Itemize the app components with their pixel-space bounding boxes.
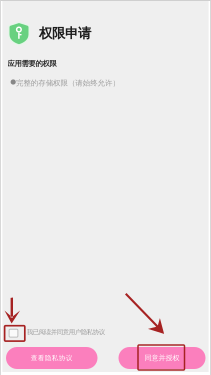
staticText: 权限申请	[39, 25, 91, 42]
staticText: 我已阅读并同意用户隐私协议	[27, 328, 105, 336]
staticText: 应用需要的权限	[7, 59, 56, 68]
staticText: 完整的存储权限（请始终允许）	[16, 78, 119, 88]
button[interactable]: 同意用户隐私协议	[9, 329, 18, 337]
staticText: 同意并授权	[144, 353, 179, 362]
button[interactable]: 同意并授权	[118, 347, 205, 369]
staticText: 查看隐私协议	[31, 354, 73, 362]
button[interactable]: 查看隐私协议	[6, 347, 97, 369]
